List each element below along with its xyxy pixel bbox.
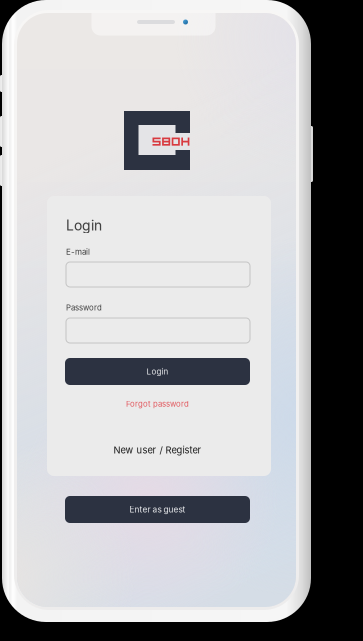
button[interactable]: Forgot password <box>65 397 250 411</box>
staticText: E-mail <box>66 247 90 257</box>
staticText: New user / Register <box>113 444 201 456</box>
staticText: Enter as guest <box>129 504 185 514</box>
staticText: Login <box>146 367 168 376</box>
button[interactable]: New user / Register <box>65 442 250 458</box>
staticText: Password <box>66 303 102 312</box>
staticText: Login <box>66 217 102 234</box>
button[interactable]: Enter as guest <box>65 496 250 523</box>
staticText: Forgot password <box>126 399 189 409</box>
button[interactable]: Login <box>65 358 250 385</box>
